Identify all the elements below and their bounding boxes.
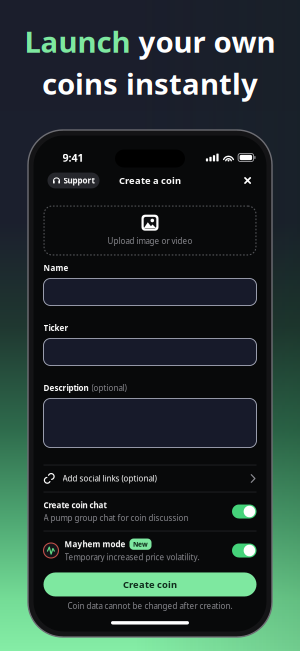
- staticText: Upload image or video: [107, 236, 192, 246]
- staticText: Temporary increased price volatility.: [64, 552, 199, 562]
- staticText: A pump group chat for coin discussion: [43, 512, 188, 523]
- staticText: your own: [130, 22, 275, 61]
- button[interactable]: Mayhem mode: [43, 531, 256, 569]
- staticText: Mayhem mode: [64, 539, 125, 549]
- staticText: Create a coin: [119, 174, 181, 187]
- staticText: Ticker: [43, 323, 68, 333]
- button[interactable]: Create coin chat: [43, 492, 256, 530]
- staticText: 9:41: [62, 150, 83, 165]
- staticText: Create coin: [123, 578, 177, 591]
- staticText: Name: [43, 263, 68, 273]
- staticText: New: [133, 540, 148, 549]
- staticText: Coin data cannot be changed after creati…: [67, 600, 232, 611]
- button[interactable]: Support: [47, 173, 99, 188]
- staticText: (optional): [91, 383, 126, 393]
- button[interactable]: Close: [241, 174, 254, 187]
- staticText: Create coin chat: [43, 500, 106, 510]
- staticText: Add social links (optional): [62, 473, 156, 484]
- button[interactable]: Create coin: [43, 572, 256, 596]
- staticText: Description: [43, 383, 88, 393]
- staticText: Support: [63, 175, 94, 186]
- button[interactable]: Add social links (optional): [43, 465, 256, 491]
- staticText: Launch: [24, 22, 130, 61]
- staticText: coins instantly: [42, 64, 258, 103]
